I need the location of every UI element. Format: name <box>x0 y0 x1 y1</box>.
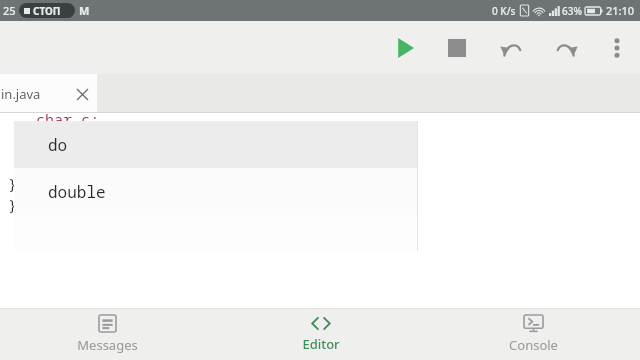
button[interactable]: Stop <box>440 31 474 65</box>
staticText: in.java <box>1 85 41 103</box>
button[interactable]: Messages <box>0 309 214 360</box>
staticText: 63% <box>562 4 582 18</box>
button[interactable]: More options <box>600 31 634 65</box>
staticText: do <box>36 150 55 170</box>
button[interactable]: double <box>14 168 418 215</box>
staticText: } <box>8 173 18 193</box>
button[interactable]: in.java <box>0 74 97 113</box>
staticText: Console <box>509 336 558 354</box>
staticText: Messages <box>77 336 138 354</box>
button[interactable]: Console <box>427 309 640 360</box>
staticText: 0 K/s <box>492 4 516 18</box>
button[interactable]: Run <box>388 31 422 65</box>
button[interactable]: Redo <box>550 31 584 65</box>
button[interactable]: Close tab <box>69 81 95 107</box>
staticText: 21:10 <box>606 3 635 18</box>
staticText: M <box>79 3 90 18</box>
staticText: double <box>48 181 106 203</box>
staticText: СТОП <box>33 4 61 18</box>
staticText: char c; <box>36 109 100 123</box>
button[interactable]: Editor <box>214 309 427 360</box>
staticText: c='s'; <box>36 128 91 148</box>
staticText: 25 <box>3 3 16 18</box>
button[interactable]: Undo <box>494 31 528 65</box>
staticText: do <box>48 134 68 156</box>
button[interactable]: do <box>14 121 418 168</box>
staticText: } <box>8 194 18 214</box>
staticText: Editor <box>302 335 340 353</box>
